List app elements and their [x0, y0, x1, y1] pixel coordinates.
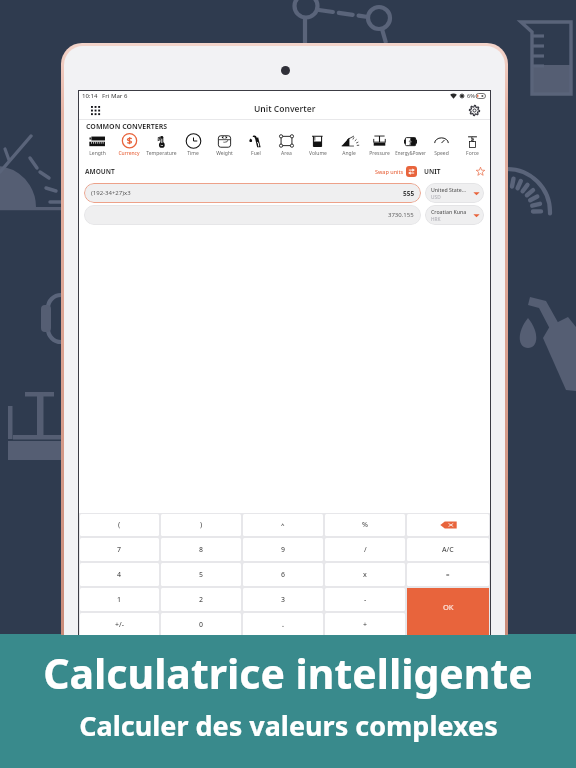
staticText: 2 [199, 595, 204, 605]
button[interactable]: OK [407, 588, 489, 635]
button[interactable]: Favorite [474, 165, 486, 177]
staticText: 10:14 Fri Mar 6 [82, 92, 128, 100]
button[interactable]: Time [177, 135, 209, 157]
staticText: 9 [281, 545, 286, 555]
staticText: 6 [281, 570, 286, 580]
button[interactable]: Weight [209, 135, 240, 157]
staticText: Volume [309, 150, 327, 157]
staticText: +/- [115, 620, 124, 630]
button[interactable]: 5 [161, 563, 241, 586]
staticText: Length [89, 150, 106, 157]
staticText: ( [118, 520, 121, 530]
button[interactable]: Angle [333, 135, 364, 157]
staticText: AMOUNT [85, 167, 115, 176]
button[interactable]: ( [80, 514, 159, 536]
staticText: 4 [117, 570, 122, 580]
staticText: 6% [467, 92, 475, 99]
button[interactable]: ^ [243, 514, 323, 536]
button[interactable]: Settings [466, 102, 482, 118]
button[interactable]: Currency [113, 135, 145, 157]
staticText: Force [466, 150, 479, 157]
staticText: Energy&Power [395, 150, 426, 156]
button[interactable]: Volume [302, 135, 333, 157]
other: Delete [440, 521, 457, 529]
button[interactable]: Pressure [364, 135, 395, 157]
staticText: Weight [216, 150, 233, 157]
button[interactable]: - [325, 588, 405, 611]
staticText: Speed [434, 150, 449, 157]
button[interactable]: + [325, 613, 405, 635]
button[interactable]: Swap units [375, 166, 417, 177]
button[interactable]: 3 [243, 588, 323, 611]
button[interactable]: Speed [426, 135, 457, 157]
button[interactable]: (192-34+27)x3 [84, 183, 421, 203]
staticText: = [446, 571, 450, 579]
staticText: + [363, 620, 368, 630]
button[interactable]: Force [457, 135, 488, 157]
button[interactable]: 4 [80, 563, 159, 586]
button[interactable]: Energy&Power [395, 135, 426, 156]
staticText: % [362, 520, 368, 530]
staticText: Calculer des valeurs complexes [79, 707, 498, 744]
staticText: Temperature [146, 150, 177, 157]
button[interactable]: Fuel [240, 135, 271, 157]
staticText: x [363, 570, 367, 580]
button[interactable]: Croatian Kuna [425, 205, 484, 225]
button[interactable]: Area [271, 135, 302, 157]
staticText: Pressure [369, 150, 390, 157]
staticText: 3 [281, 595, 286, 605]
button[interactable]: United State... [425, 183, 484, 203]
button[interactable]: 8 [161, 538, 241, 561]
staticText: Calculatrice intelligente [43, 645, 533, 701]
staticText: HRK [431, 216, 441, 223]
staticText: Area [281, 150, 292, 157]
staticText: 1 [117, 595, 122, 605]
button[interactable]: x [325, 563, 405, 586]
staticText: 555 [403, 189, 415, 198]
button[interactable]: Menu [87, 102, 103, 118]
button[interactable]: A/C [407, 538, 489, 561]
staticText: OK [443, 602, 454, 612]
button[interactable]: Temperature [145, 135, 177, 157]
button[interactable]: = [407, 563, 489, 586]
button[interactable]: ) [161, 514, 241, 536]
button[interactable]: 0 [161, 613, 241, 635]
button[interactable]: Delete [407, 514, 489, 536]
button[interactable]: 6 [243, 563, 323, 586]
button[interactable]: 9 [243, 538, 323, 561]
staticText: A/C [442, 545, 454, 555]
staticText: Time [187, 150, 199, 157]
staticText: Currency [118, 150, 140, 157]
staticText: - [364, 595, 367, 605]
staticText: Fuel [251, 150, 261, 157]
staticText: 5 [199, 570, 204, 580]
button[interactable]: % [325, 514, 405, 536]
staticText: ^ [281, 521, 285, 529]
staticText: Unit Converter [254, 103, 316, 115]
staticText: 7 [117, 545, 122, 555]
staticText: USD [431, 194, 441, 201]
button[interactable]: 3730.155 [84, 205, 421, 225]
staticText: / [364, 545, 367, 555]
staticText: 8 [199, 545, 204, 555]
staticText: Angle [342, 150, 356, 157]
staticText: Croatian Kuna [431, 208, 467, 215]
button[interactable]: 2 [161, 588, 241, 611]
staticText: Swap units [375, 168, 404, 175]
staticText: ) [200, 520, 203, 530]
staticText: United State... [431, 186, 467, 193]
staticText: UNIT [424, 167, 441, 176]
button[interactable]: 1 [80, 588, 159, 611]
staticText: 3730.155 [388, 211, 414, 219]
button[interactable]: / [325, 538, 405, 561]
button[interactable]: +/- [80, 613, 159, 635]
button[interactable]: 7 [80, 538, 159, 561]
staticText: . [282, 620, 284, 630]
staticText: 0 [199, 620, 204, 630]
button[interactable]: Length [81, 135, 113, 157]
staticText: COMMON CONVERTERS [86, 122, 168, 132]
staticText: (192-34+27)x3 [91, 189, 131, 197]
